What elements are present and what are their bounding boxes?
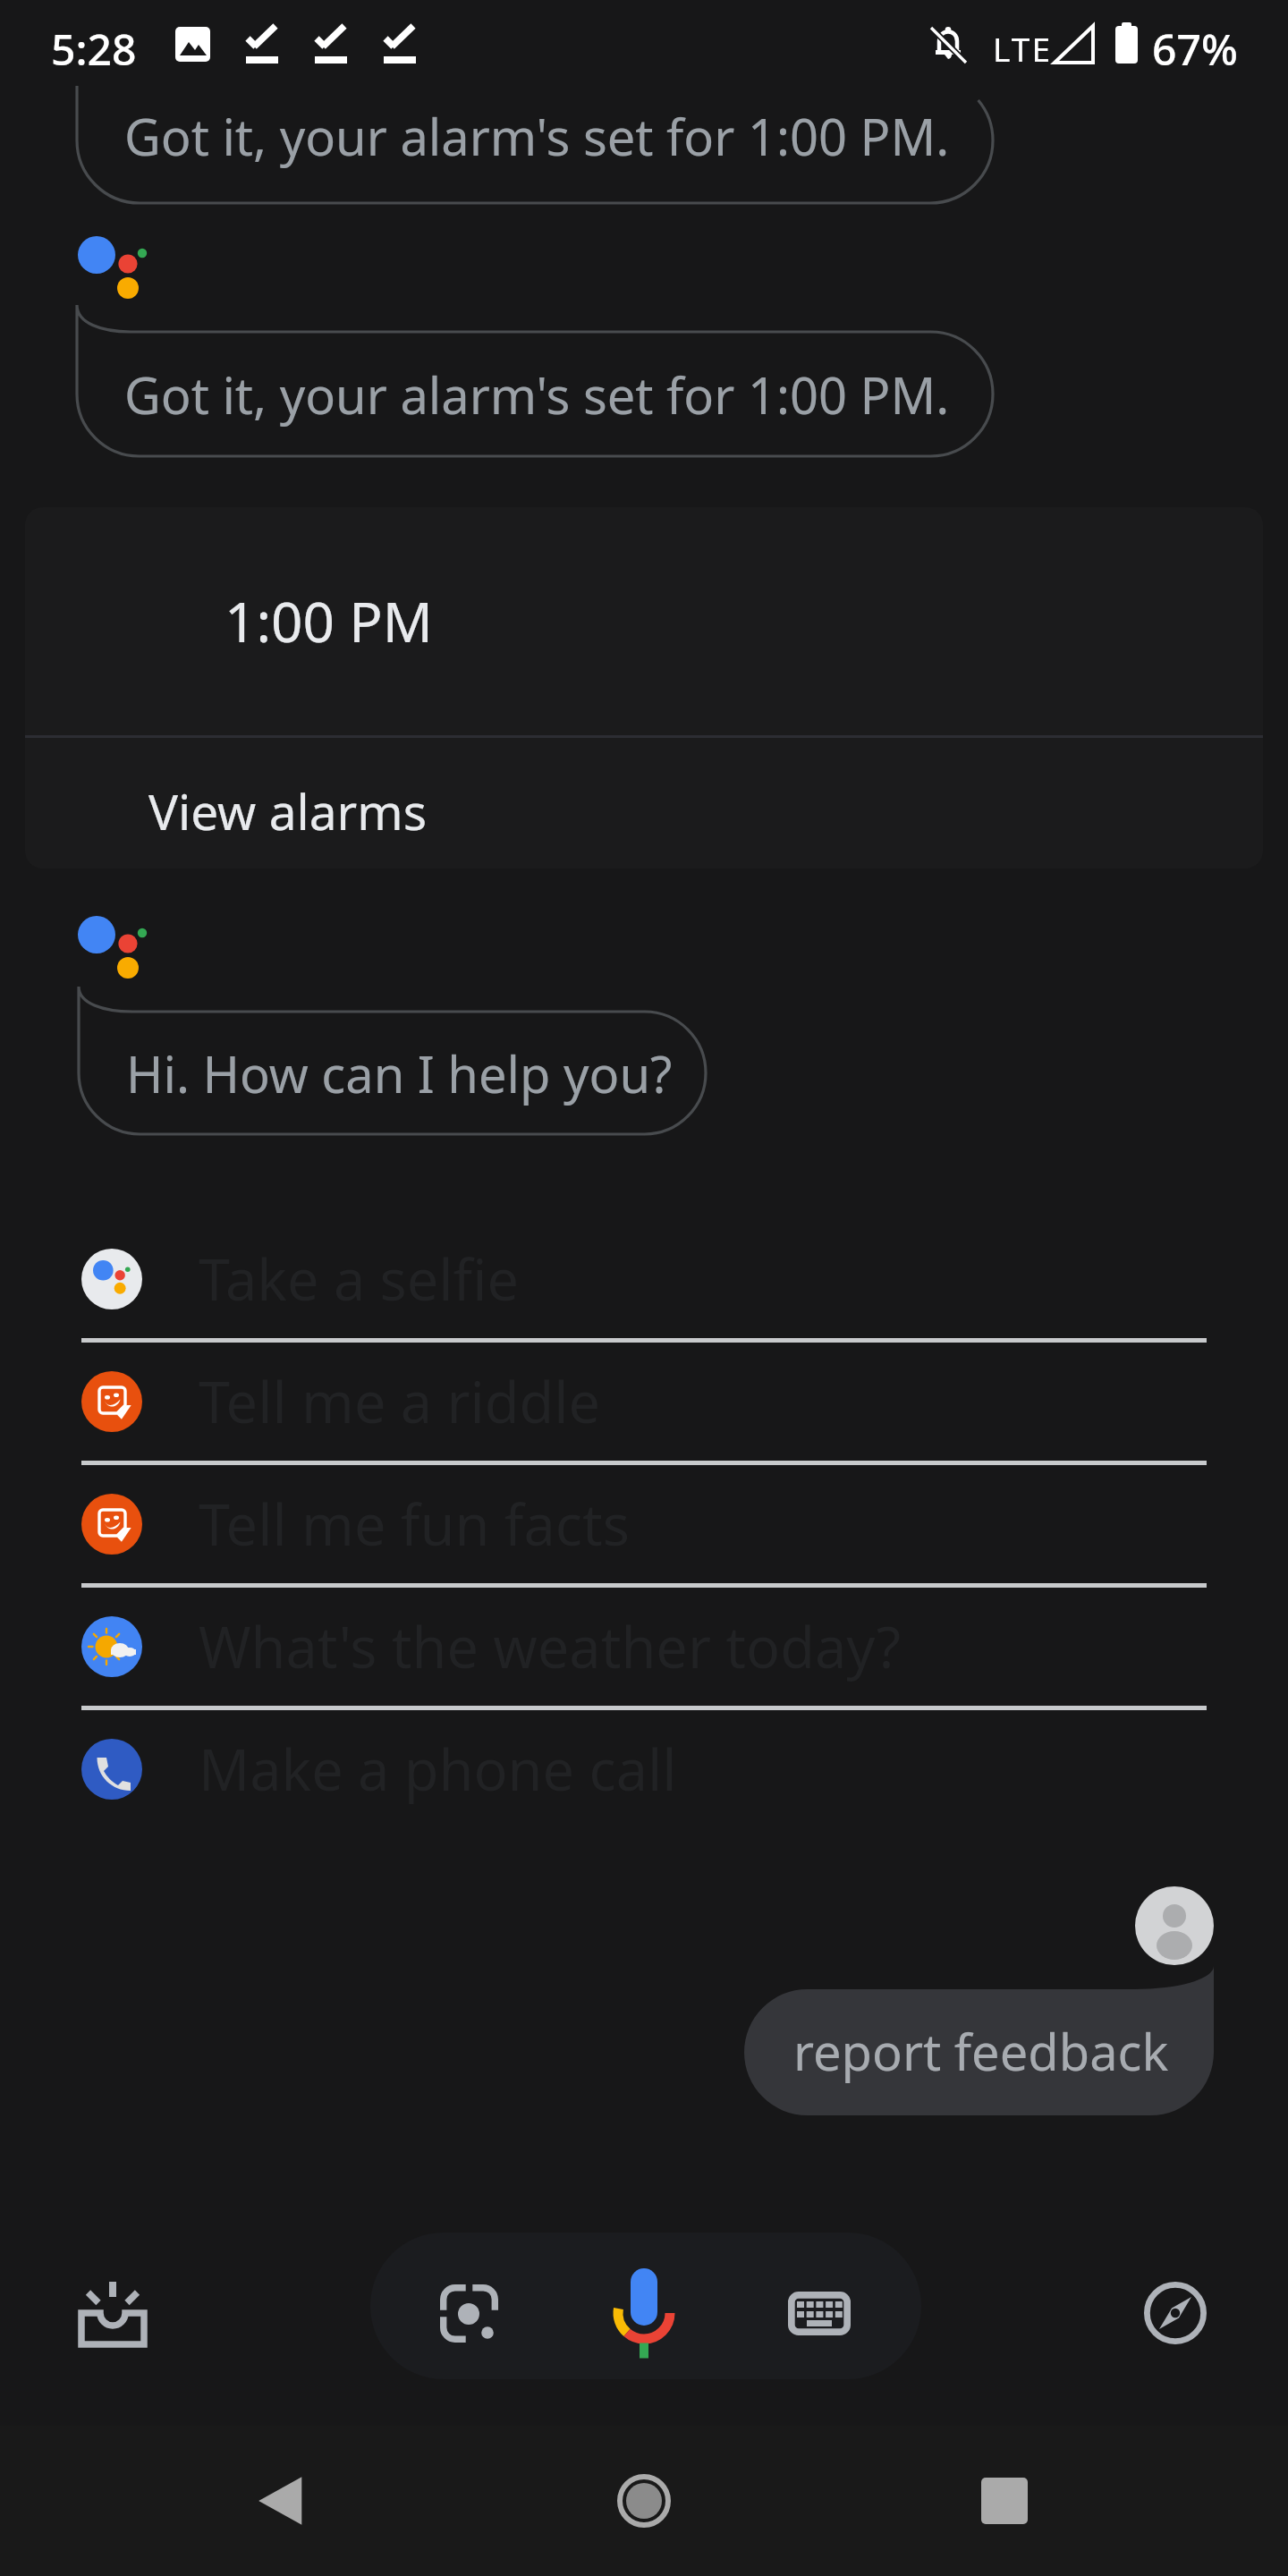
button[interactable]: Back xyxy=(230,2447,337,2555)
staticText: Got it, your alarm's set for 1:00 PM. xyxy=(124,102,950,170)
staticText: 67% xyxy=(1152,20,1238,78)
button[interactable]: Recents xyxy=(951,2447,1058,2555)
button[interactable]: Got it, your alarm's set for 1:00 PM. xyxy=(77,86,993,203)
button[interactable]: Got it, your alarm's set for 1:00 PM. xyxy=(77,332,993,456)
staticText: Take a selfie xyxy=(199,1241,520,1318)
button[interactable]: Home xyxy=(590,2447,698,2555)
button[interactable]: Take a selfie xyxy=(0,1220,1288,1338)
staticText: 1:00 PM xyxy=(225,583,433,658)
button[interactable]: Keyboard xyxy=(761,2255,877,2371)
button[interactable]: report feedback xyxy=(744,1966,1214,2115)
staticText: 5:28 xyxy=(51,20,137,78)
button[interactable]: Snapshot xyxy=(55,2255,171,2371)
button[interactable]: Hi. How can I help you? xyxy=(79,1012,706,1134)
button[interactable]: Tell me fun facts xyxy=(0,1465,1288,1583)
staticText: Tell me a riddle xyxy=(199,1363,601,1440)
button[interactable]: Explore xyxy=(1117,2255,1233,2371)
staticText: What's the weather today? xyxy=(199,1608,901,1685)
button[interactable]: Voice search xyxy=(586,2255,702,2371)
button[interactable]: Google Lens xyxy=(411,2255,527,2371)
button[interactable]: What's the weather today? xyxy=(0,1588,1288,1706)
staticText: report feedback xyxy=(793,2017,1169,2085)
staticText: LTE xyxy=(993,26,1053,71)
button[interactable]: Tell me a riddle xyxy=(0,1343,1288,1461)
staticText: Got it, your alarm's set for 1:00 PM. xyxy=(124,360,950,428)
button[interactable]: View alarms xyxy=(25,738,1263,869)
staticText: Make a phone call xyxy=(199,1731,677,1808)
staticText: Hi. How can I help you? xyxy=(126,1039,673,1107)
staticText: View alarms xyxy=(148,777,428,844)
staticText: Tell me fun facts xyxy=(199,1486,630,1563)
button[interactable]: Make a phone call xyxy=(0,1710,1288,1828)
